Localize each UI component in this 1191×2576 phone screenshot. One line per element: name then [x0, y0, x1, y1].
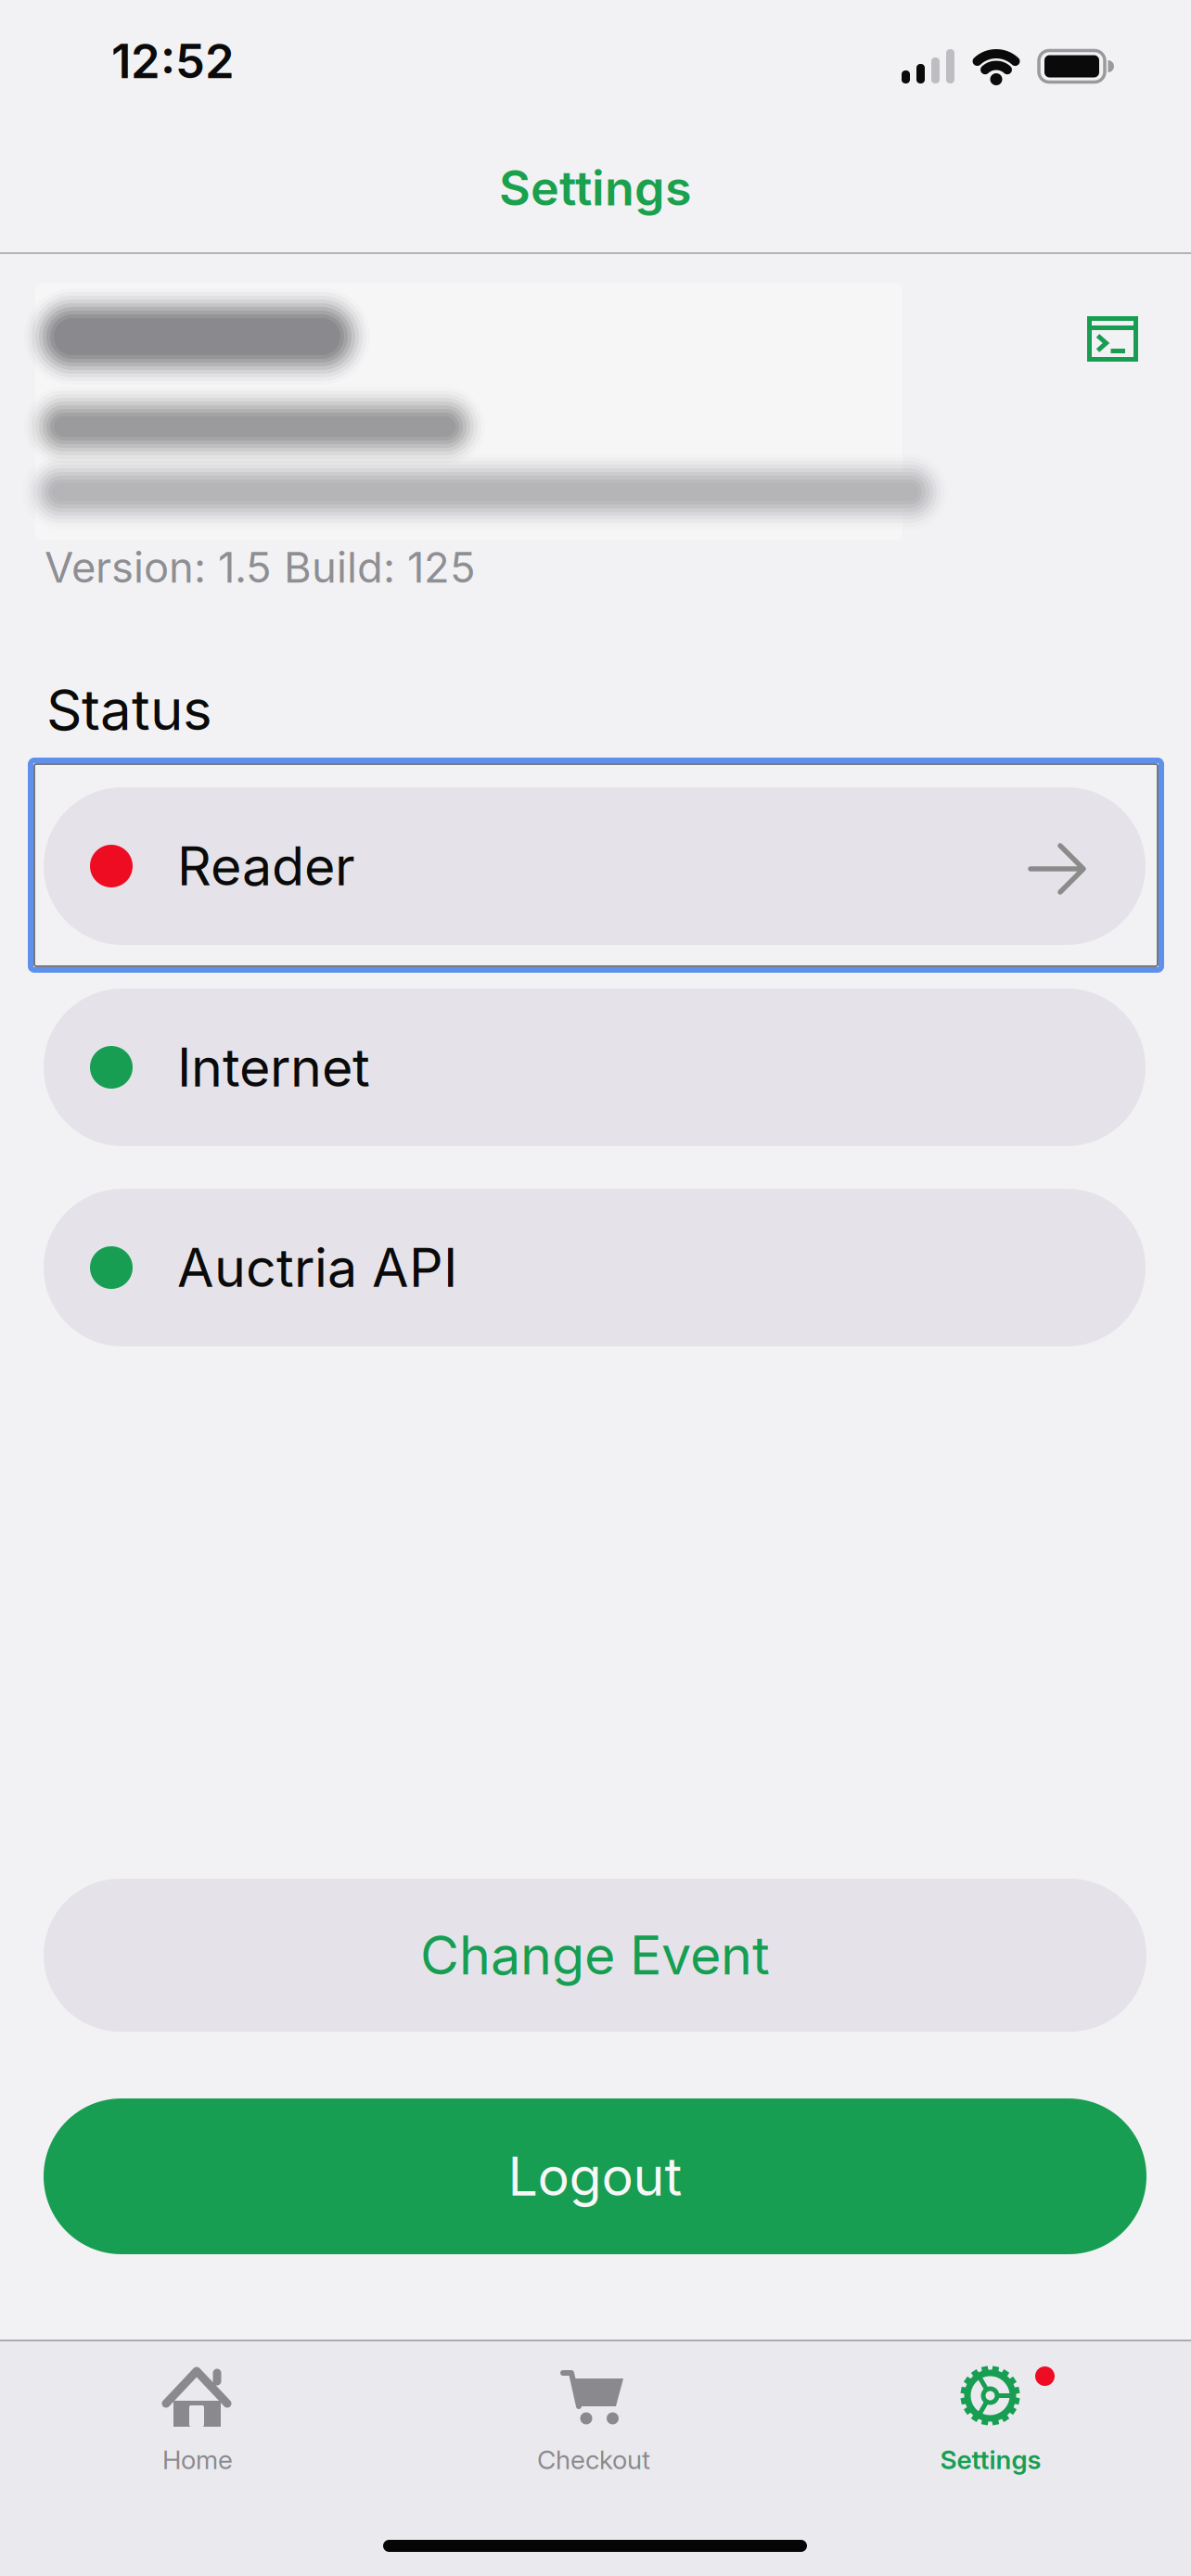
- button[interactable]: Checkout: [462, 2363, 725, 2502]
- staticText: Reader: [177, 835, 355, 897]
- button[interactable]: Home: [66, 2363, 329, 2502]
- staticText: 12:52: [111, 33, 235, 89]
- button[interactable]: Reader: [44, 787, 1146, 945]
- button[interactable]: Change Event: [44, 1879, 1146, 2032]
- staticText: Settings: [499, 159, 692, 216]
- staticText: Logout: [508, 2145, 682, 2208]
- staticText: Version: 1.5 Build: 125: [45, 542, 476, 592]
- staticText: Internet: [177, 1036, 370, 1099]
- staticText: Change Event: [420, 1924, 770, 1987]
- button[interactable]: Developer console: [1087, 316, 1138, 362]
- button[interactable]: Settings: [859, 2363, 1122, 2502]
- staticText: Auctria API: [177, 1236, 457, 1299]
- staticText: Checkout: [537, 2444, 650, 2475]
- staticText: Status: [46, 677, 212, 743]
- staticText: Home: [162, 2444, 233, 2475]
- button[interactable]: Internet: [44, 988, 1146, 1146]
- staticText: Settings: [940, 2444, 1041, 2475]
- button[interactable]: Logout: [44, 2098, 1146, 2254]
- button[interactable]: Auctria API: [44, 1189, 1146, 1346]
